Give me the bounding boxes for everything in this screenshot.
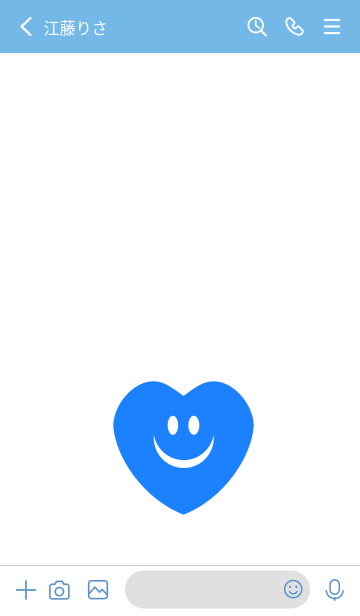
button[interactable]: Menu [313,0,351,53]
button[interactable]: Message field [125,570,310,608]
staticText: 江藤りさ [43,15,107,39]
button[interactable]: Back [8,0,44,53]
button[interactable]: Call [275,0,313,53]
button[interactable]: Emoji [278,570,308,608]
button[interactable]: More options [6,565,46,615]
button[interactable]: Camera [39,565,79,615]
button[interactable]: Voice message [315,565,355,615]
button[interactable]: Photos [78,565,118,615]
button[interactable]: Search messages [238,0,276,53]
